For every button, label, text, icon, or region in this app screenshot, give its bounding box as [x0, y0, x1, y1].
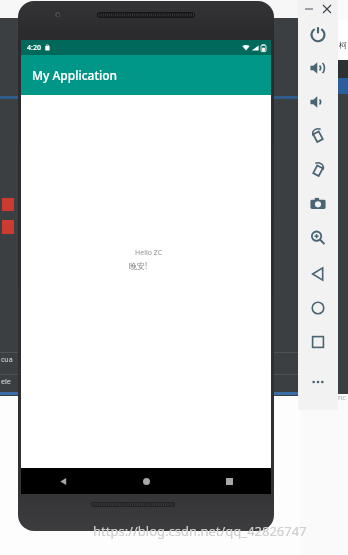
staticText: 柯: [339, 40, 347, 50]
staticText: ele: [1, 377, 11, 387]
button[interactable]: Back: [306, 262, 330, 286]
staticText: cua: [1, 355, 13, 365]
button[interactable]: Back: [21, 468, 105, 494]
staticText: 4:20: [27, 43, 41, 53]
button[interactable]: Volume up: [306, 56, 330, 80]
button[interactable]: More: [306, 370, 330, 394]
button[interactable]: Rotate left: [306, 124, 330, 148]
staticText: Hello ZC: [135, 248, 163, 258]
button[interactable]: Volume down: [306, 90, 330, 114]
button[interactable]: Overview: [306, 330, 330, 354]
button[interactable]: Minimize: [302, 2, 316, 16]
button[interactable]: Power: [306, 22, 330, 46]
staticText: https://blog.csdn.net/qq_42826747: [93, 522, 348, 540]
button[interactable]: Home: [306, 296, 330, 320]
button[interactable]: Zoom: [306, 226, 330, 250]
staticText: My Application: [32, 67, 118, 83]
button[interactable]: Close: [320, 2, 334, 16]
button[interactable]: Home: [105, 468, 188, 494]
staticText: nc: [338, 393, 346, 403]
button[interactable]: My Application: [21, 55, 271, 95]
button[interactable]: Recent apps: [188, 468, 271, 494]
button[interactable]: Take screenshot: [306, 192, 330, 216]
button[interactable]: Rotate right: [306, 158, 330, 182]
staticText: 晚安!: [129, 260, 148, 271]
